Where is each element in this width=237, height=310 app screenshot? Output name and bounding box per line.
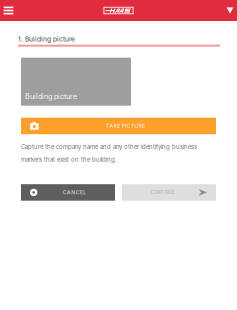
staticText: Building picture <box>25 92 77 101</box>
button[interactable]: CANCEL <box>21 184 115 201</box>
staticText: CANCEL <box>63 189 86 195</box>
button[interactable]: TAKE PICTURE <box>21 118 216 134</box>
button[interactable]: Menu <box>0 0 17 21</box>
staticText: 1. Building picture <box>18 35 75 43</box>
staticText: TAKE PICTURE <box>106 123 145 129</box>
staticText: Capture the company name and any other i… <box>21 143 197 163</box>
staticText: CONTINUE <box>151 190 175 195</box>
button[interactable]: More options <box>223 0 237 21</box>
button[interactable]: CONTINUE <box>122 184 216 201</box>
